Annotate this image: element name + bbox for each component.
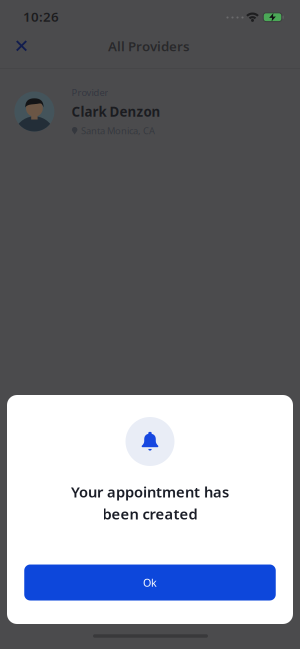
button[interactable]: Close (10, 34, 33, 57)
button[interactable]: Ok (24, 564, 276, 600)
button[interactable]: Provider (0, 85, 300, 137)
staticText: All Providers (108, 37, 190, 55)
staticText: Santa Monica, CA (81, 124, 155, 137)
staticText: Provider (71, 86, 108, 99)
staticText: Clark Denzon (71, 103, 160, 120)
staticText: Your appointment has (71, 482, 229, 501)
staticText: 10:26 (23, 8, 59, 25)
staticText: Ok (143, 575, 157, 590)
staticText: been created (102, 504, 197, 523)
